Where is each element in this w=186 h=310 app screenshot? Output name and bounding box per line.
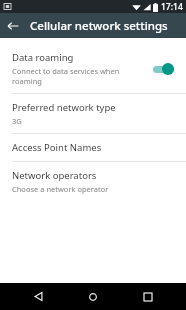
- button[interactable]: Home: [76, 283, 110, 310]
- staticText: Access Point Names: [12, 141, 102, 154]
- staticText: Network operators: [12, 169, 97, 182]
- staticText: 17:14: [161, 1, 183, 13]
- staticText: Choose a network operator: [12, 184, 109, 194]
- button[interactable]: Access Point Names: [0, 134, 186, 161]
- staticText: Preferred network type: [12, 101, 116, 114]
- button[interactable]: Back: [0, 13, 25, 38]
- staticText: Connect to data services when roaming: [12, 66, 150, 86]
- button[interactable]: Network operators: [0, 162, 186, 201]
- button[interactable]: Back: [21, 283, 55, 310]
- staticText: Data roaming: [12, 51, 74, 64]
- staticText: 3G: [12, 116, 22, 126]
- button[interactable]: Data roaming: [0, 44, 186, 93]
- button[interactable]: Recent apps: [131, 283, 165, 310]
- staticText: Cellular network settings: [30, 18, 168, 34]
- button[interactable]: Data roaming toggle: [150, 62, 178, 76]
- button[interactable]: Preferred network type: [0, 94, 186, 133]
